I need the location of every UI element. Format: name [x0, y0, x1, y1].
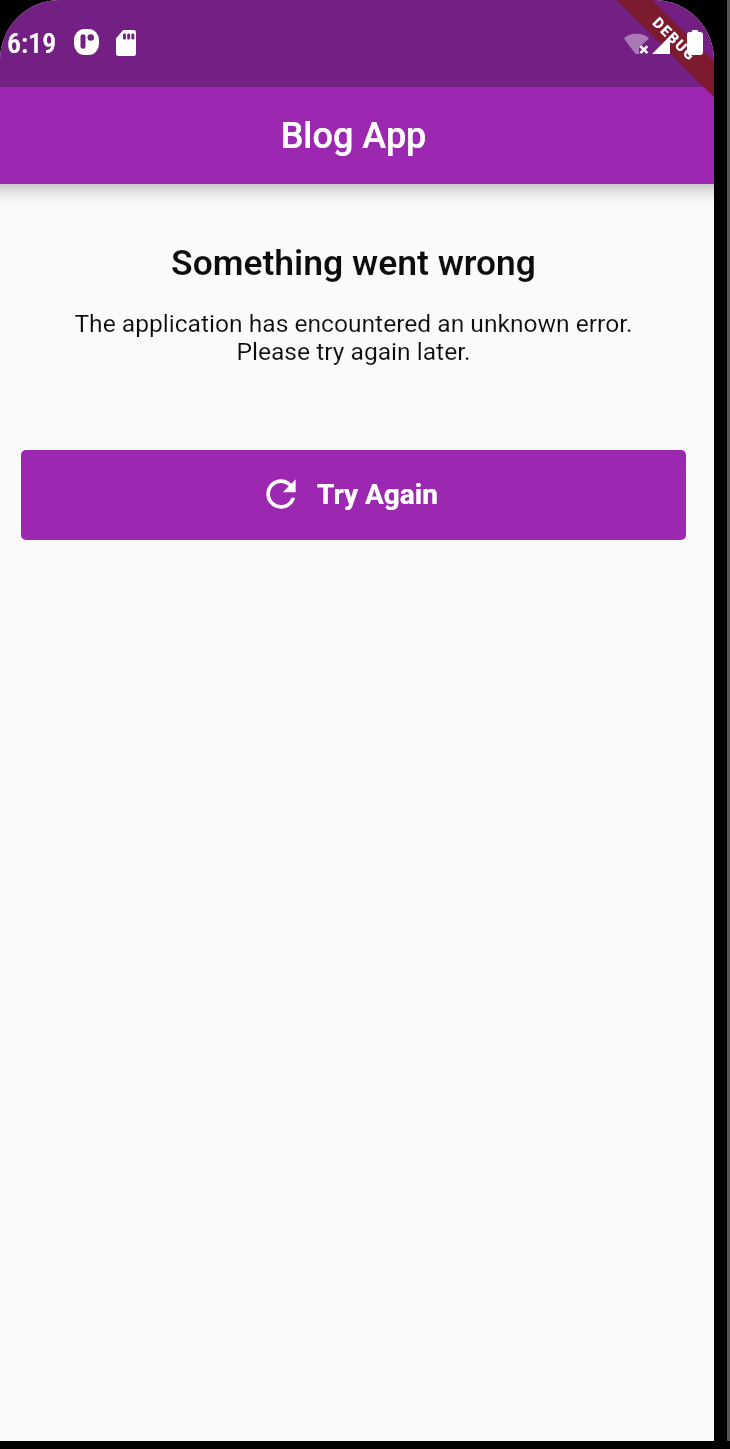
button[interactable]: Try Again [21, 450, 686, 540]
staticText: Try Again [317, 478, 438, 511]
other: No wifi [624, 32, 649, 54]
staticText: 6:19 [7, 27, 57, 60]
staticText: The application has encountered an unkno… [0, 309, 707, 366]
staticText: Blog App [0, 115, 707, 157]
staticText: Something went wrong [0, 242, 707, 283]
staticText: DEBUG [649, 14, 700, 65]
